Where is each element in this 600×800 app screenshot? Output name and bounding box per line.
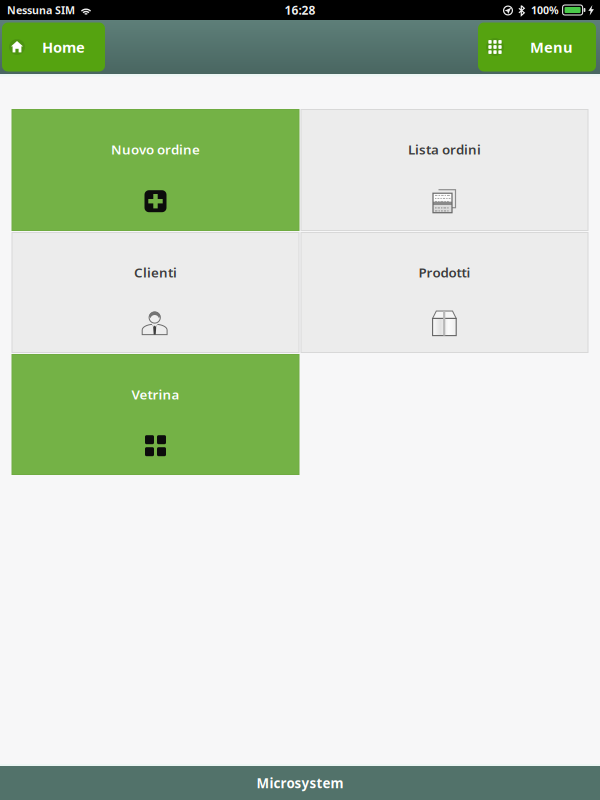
staticText: Menu — [530, 37, 573, 57]
staticText: 16:28 — [284, 2, 315, 18]
staticText: Home — [42, 37, 85, 57]
staticText: Lista ordini — [408, 140, 481, 158]
button[interactable]: Home — [2, 22, 105, 71]
button[interactable]: Clienti — [12, 232, 299, 352]
staticText: Clienti — [134, 263, 177, 281]
button[interactable]: Prodotti — [301, 232, 588, 352]
staticText: Nessuna SIM — [7, 3, 75, 17]
staticText: Nuovo ordine — [111, 140, 200, 158]
staticText: Microsystem — [256, 774, 343, 792]
button[interactable]: Menu — [478, 22, 596, 71]
button[interactable]: Vetrina — [12, 354, 299, 474]
staticText: 100% — [531, 3, 559, 17]
button[interactable]: Nuovo ordine — [12, 109, 299, 230]
button[interactable]: Lista ordini — [301, 109, 588, 230]
staticText: Vetrina — [131, 385, 179, 403]
staticText: Prodotti — [418, 263, 470, 281]
